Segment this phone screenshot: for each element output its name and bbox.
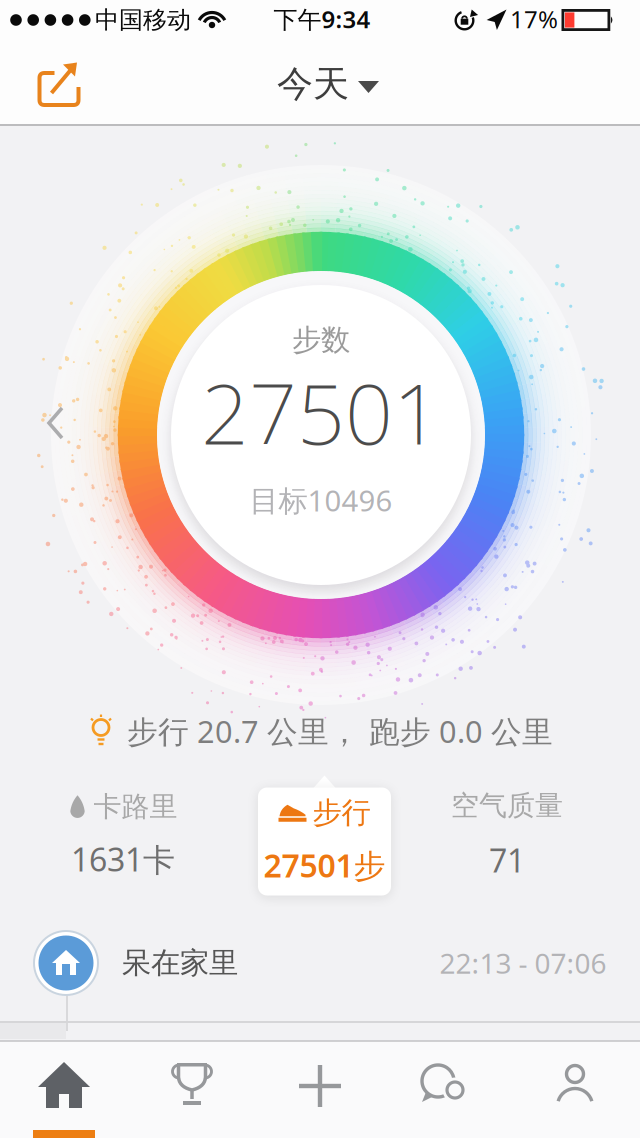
button[interactable]: Home — [38, 1062, 90, 1108]
staticText: 卡路里 — [93, 790, 177, 824]
button[interactable]: Community — [420, 1064, 468, 1104]
staticText: 1631卡 — [71, 838, 175, 880]
staticText: 71 — [489, 839, 525, 881]
staticText: 步行 20.7 公里， 跑步 0.0 公里 — [127, 711, 553, 751]
button[interactable]: 今天 — [277, 62, 379, 106]
button[interactable]: 卡路里 — [33, 783, 213, 887]
button[interactable]: 空气质量 — [417, 783, 597, 887]
staticText: 呆在家里 — [122, 945, 238, 981]
staticText: 中国移动 — [95, 5, 191, 35]
staticText: 目标10496 — [249, 480, 392, 519]
staticText: 步数 — [292, 322, 350, 358]
button[interactable]: 步行 — [258, 775, 391, 895]
button[interactable]: Share — [37, 61, 80, 107]
staticText: 下午9:34 — [273, 3, 370, 35]
staticText: 27501步 — [263, 844, 385, 886]
button[interactable]: Profile — [557, 1065, 595, 1105]
button[interactable]: Previous day — [47, 406, 65, 440]
button[interactable]: Achievements — [170, 1063, 214, 1105]
staticText: 27501 — [201, 356, 441, 468]
button[interactable]: Add — [299, 1065, 341, 1107]
staticText: 空气质量 — [451, 789, 563, 823]
button[interactable]: 呆在家里 — [0, 915, 640, 1011]
staticText: 今天 — [277, 62, 349, 106]
staticText: 17% — [510, 3, 558, 35]
staticText: 步行 — [312, 795, 370, 831]
staticText: 22:13 - 07:06 — [439, 944, 606, 982]
